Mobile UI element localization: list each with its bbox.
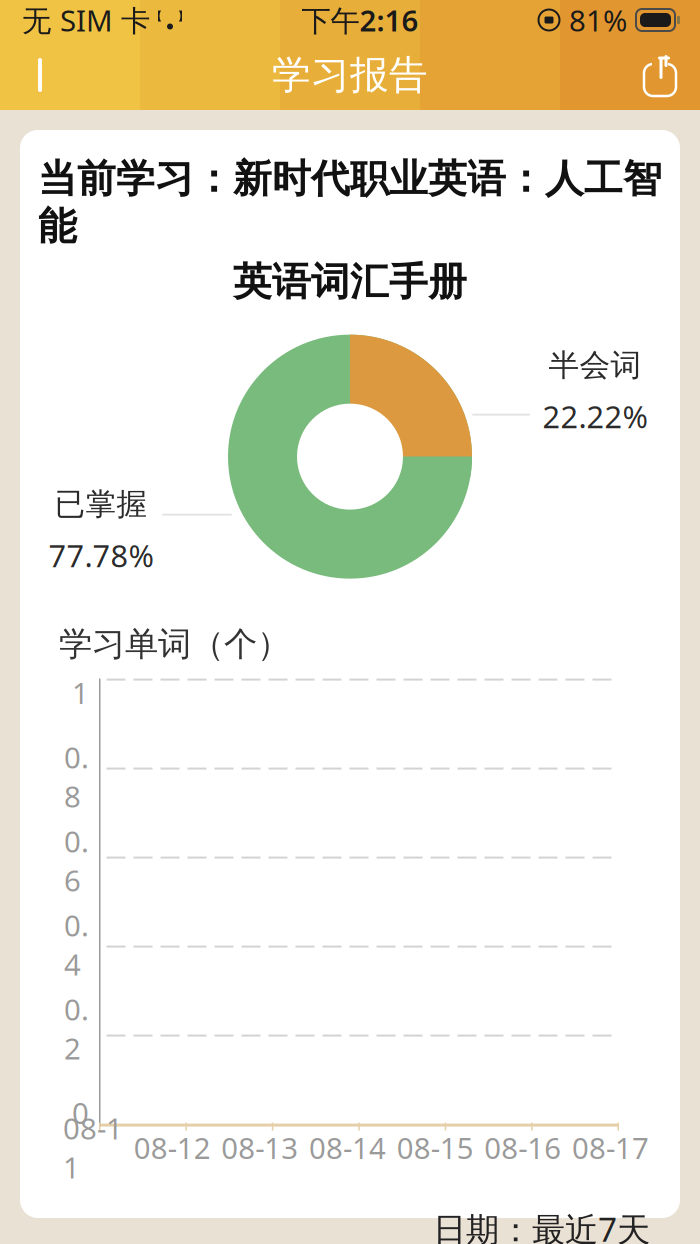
staticText: 0.4 (64, 906, 89, 983)
staticText: 已掌握 (54, 485, 147, 523)
staticText: 0.2 (64, 990, 89, 1067)
button[interactable]: Back (0, 40, 80, 110)
staticText: 0.8 (64, 738, 89, 815)
staticText: 1 (72, 673, 89, 712)
staticText: 半会词 (548, 346, 641, 384)
staticText: 08-11 (63, 1109, 123, 1186)
staticText: 学习报告 (272, 51, 428, 99)
staticText: 08-14 (309, 1128, 386, 1167)
staticText: 22.22% (542, 396, 647, 437)
staticText: 08-13 (221, 1128, 298, 1167)
staticText: 08-12 (134, 1128, 211, 1167)
button[interactable]: Share (620, 40, 700, 110)
staticText: 无 SIM 卡 (22, 0, 150, 39)
staticText: 日期：最近7天 (433, 1207, 650, 1244)
staticText: 77.78% (48, 535, 153, 576)
staticText: 学习单词（个） (59, 624, 290, 664)
staticText: 下午2:16 (301, 0, 418, 39)
staticText: 0 (72, 1093, 89, 1132)
staticText: 08-15 (397, 1128, 474, 1167)
staticText: 0.6 (64, 822, 89, 899)
staticText: 81% (569, 0, 627, 39)
staticText: 08-16 (484, 1128, 561, 1167)
staticText: 08-17 (572, 1128, 649, 1167)
staticText: 当前学习：新时代职业英语：人工智能 (38, 155, 662, 250)
staticText: 英语词汇手册 (233, 258, 467, 306)
